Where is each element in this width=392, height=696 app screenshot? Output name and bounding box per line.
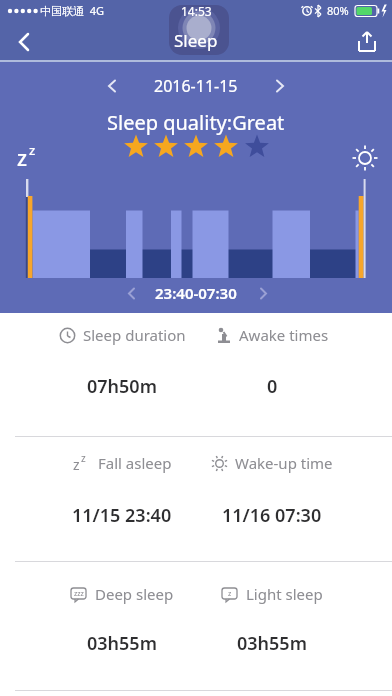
staticText: Deep sleep — [95, 584, 174, 604]
staticText: Sleep — [174, 29, 218, 52]
staticText: zzz — [74, 589, 84, 599]
staticText: z — [73, 455, 80, 473]
button[interactable] — [96, 74, 128, 98]
staticText: 中国联通 4G — [40, 3, 105, 18]
button[interactable]: z — [192, 582, 352, 606]
staticText: 11/16 07:30 — [222, 503, 322, 527]
staticText: 14:53 — [181, 3, 212, 19]
button[interactable] — [348, 26, 386, 58]
button[interactable] — [169, 5, 229, 55]
button[interactable] — [264, 74, 296, 98]
staticText: 23:40-07:30 — [155, 283, 237, 303]
staticText: 2016-11-15 — [154, 75, 238, 97]
staticText: 03h55m — [87, 631, 157, 655]
staticText: Sleep duration — [83, 325, 186, 345]
staticText: 03h55m — [237, 631, 307, 655]
staticText: z — [81, 451, 86, 465]
staticText: 07h50m — [87, 374, 157, 398]
button[interactable]: z — [42, 451, 202, 475]
button[interactable]: Sleep duration — [42, 323, 202, 347]
staticText: z — [228, 589, 232, 599]
staticText: Awake times — [239, 325, 329, 345]
staticText: Light sleep — [246, 584, 323, 604]
staticText: z — [29, 141, 36, 159]
button[interactable]: Awake times — [192, 323, 352, 347]
staticText: Fall asleep — [98, 453, 172, 473]
button[interactable] — [118, 281, 144, 305]
button[interactable] — [6, 26, 42, 58]
staticText: 0 — [267, 374, 278, 398]
button[interactable]: zzz — [42, 582, 202, 606]
button[interactable] — [250, 281, 276, 305]
button[interactable]: Wake-up time — [192, 451, 352, 475]
staticText: Sleep quality:Great — [107, 109, 285, 135]
staticText: Wake-up time — [235, 453, 333, 473]
staticText: 80% — [327, 3, 349, 18]
staticText: 11/15 23:40 — [72, 503, 172, 527]
staticText: z — [17, 144, 28, 173]
